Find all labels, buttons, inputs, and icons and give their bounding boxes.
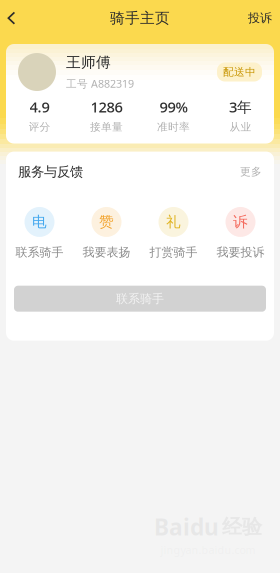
button[interactable]: 返回 <box>0 0 44 36</box>
staticText: 更多 <box>240 165 262 178</box>
button[interactable]: 诉 <box>207 207 274 260</box>
staticText: 礼 <box>166 213 181 231</box>
staticText: 骑手主页 <box>110 9 170 27</box>
staticText: Baidu <box>154 512 219 542</box>
staticText: 诉 <box>233 213 248 231</box>
button[interactable]: 投诉 <box>224 0 280 36</box>
staticText: 王师傅 <box>66 53 111 71</box>
staticText: 4.9 <box>29 97 49 116</box>
staticText: 赞 <box>99 213 114 231</box>
button[interactable]: 赞 <box>73 207 140 260</box>
staticText: 我要投诉 <box>216 245 264 260</box>
staticText: 我要表扬 <box>82 245 130 260</box>
button[interactable]: 电 <box>6 207 73 260</box>
staticText: 1286 <box>90 97 122 116</box>
staticText: 配送中 <box>223 65 256 78</box>
button[interactable]: 礼 <box>140 207 207 260</box>
staticText: 3年 <box>229 97 252 116</box>
staticText: 从业 <box>229 120 251 134</box>
staticText: 联系骑手 <box>116 291 164 306</box>
staticText: 准时率 <box>157 120 190 134</box>
staticText: 经验 <box>222 514 262 539</box>
staticText: 打赏骑手 <box>149 245 197 260</box>
staticText: 99% <box>159 97 187 116</box>
staticText: 工号 A882319 <box>66 76 134 91</box>
staticText: 联系骑手 <box>15 245 63 260</box>
staticText: 评分 <box>28 120 50 134</box>
button[interactable]: 联系骑手 <box>6 286 274 341</box>
button[interactable]: 更多 <box>240 165 262 178</box>
staticText: 投诉 <box>248 11 272 25</box>
staticText: 服务与反馈 <box>18 164 83 180</box>
staticText: 接单量 <box>90 120 123 134</box>
staticText: 电 <box>32 213 47 231</box>
